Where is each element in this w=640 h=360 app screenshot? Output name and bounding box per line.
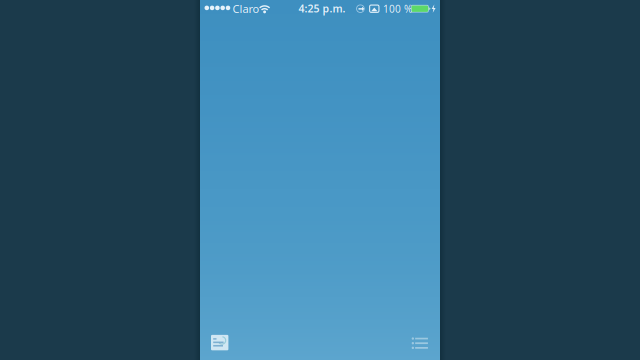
button[interactable]: City list — [406, 331, 434, 355]
staticText: 100 % — [383, 2, 412, 15]
button[interactable]: The Weather Channel — [207, 331, 232, 354]
staticText: Claro — [232, 1, 259, 16]
staticText: 4:25 p.m. — [298, 1, 345, 15]
